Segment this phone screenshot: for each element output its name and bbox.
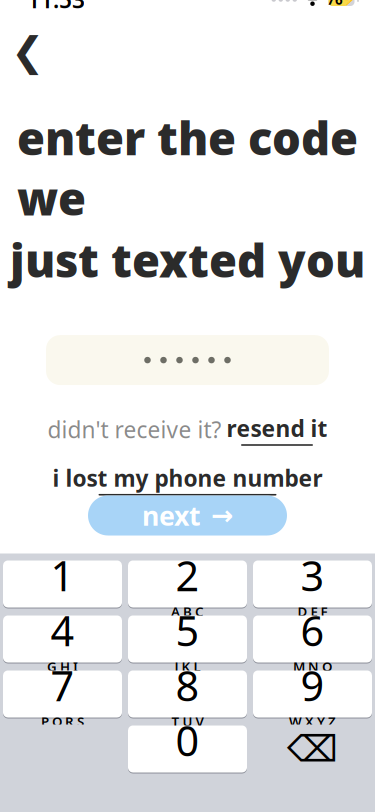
button[interactable]: 9 bbox=[253, 669, 372, 718]
staticText: A B C bbox=[171, 603, 204, 620]
button[interactable]: Delete bbox=[253, 724, 372, 773]
staticText: 1 bbox=[50, 548, 74, 603]
button[interactable]: 6 bbox=[253, 614, 372, 663]
staticText: ❮ bbox=[11, 29, 45, 74]
button[interactable]: i lost my phone number bbox=[52, 463, 322, 495]
staticText: next bbox=[142, 498, 201, 533]
staticText: 8 bbox=[175, 658, 199, 713]
staticText: G H I bbox=[47, 658, 78, 675]
staticText: i lost my phone number bbox=[52, 463, 322, 493]
staticText: 3 bbox=[300, 548, 324, 603]
staticText: 9 bbox=[300, 658, 324, 713]
staticText: 5 bbox=[175, 603, 199, 658]
staticText: ⚡ bbox=[343, 0, 356, 6]
staticText: → bbox=[211, 500, 233, 531]
staticText: W X Y Z bbox=[289, 713, 336, 730]
button[interactable]: 7 bbox=[3, 669, 122, 718]
button[interactable]: 4 bbox=[3, 614, 122, 663]
button[interactable]: resend it bbox=[226, 413, 327, 446]
staticText: resend it bbox=[226, 413, 327, 443]
staticText: T U V bbox=[171, 713, 203, 730]
button[interactable]: next bbox=[88, 495, 287, 535]
staticText: ⌫ bbox=[287, 729, 338, 769]
staticText: 4 bbox=[50, 603, 74, 658]
staticText: just texted you bbox=[10, 230, 365, 290]
staticText: didn't receive it? bbox=[47, 414, 221, 444]
staticText: 2 bbox=[175, 548, 199, 603]
staticText: P Q R S bbox=[41, 713, 84, 730]
staticText: M N O bbox=[293, 658, 332, 675]
staticText: 0 bbox=[175, 713, 199, 768]
staticText: 76 bbox=[327, 0, 343, 8]
button[interactable]: 5 bbox=[128, 614, 247, 663]
button[interactable]: 3 bbox=[253, 559, 372, 608]
staticText: 11:53 bbox=[27, 0, 85, 15]
staticText: 6 bbox=[300, 603, 324, 658]
button[interactable]: 0 bbox=[128, 724, 247, 773]
staticText: J K L bbox=[174, 658, 200, 675]
staticText: 7 bbox=[50, 658, 74, 713]
staticText: enter the code we bbox=[17, 107, 358, 228]
button[interactable]: Back bbox=[6, 29, 50, 73]
button[interactable]: 1 bbox=[3, 559, 122, 608]
staticText: D E F bbox=[297, 603, 327, 620]
button[interactable]: 2 bbox=[128, 559, 247, 608]
button[interactable]: Verification code field bbox=[46, 335, 329, 385]
button[interactable]: 8 bbox=[128, 669, 247, 718]
